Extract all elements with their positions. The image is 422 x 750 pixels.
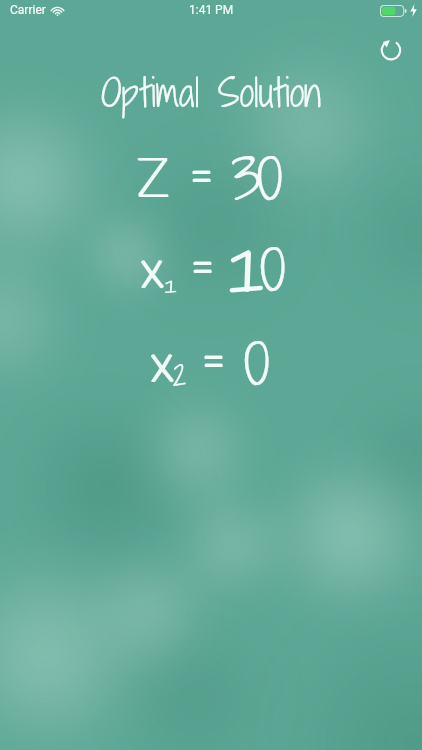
staticText: Optimal Solution [0,66,422,120]
staticText: 3 [231,140,262,218]
staticText: 0 [257,140,282,218]
staticText: 0 [244,325,269,403]
staticText: 1:41 PM [189,3,234,17]
staticText: = [187,141,214,208]
staticText: = [188,232,215,299]
staticText: Z [137,146,169,213]
staticText: 2 [173,357,187,395]
button[interactable]: Refresh [368,26,414,72]
staticText: x [150,331,175,398]
staticText: x [140,237,165,304]
staticText: Carrier [10,3,46,17]
staticText: = [199,326,226,393]
staticText: 0 [260,231,285,309]
